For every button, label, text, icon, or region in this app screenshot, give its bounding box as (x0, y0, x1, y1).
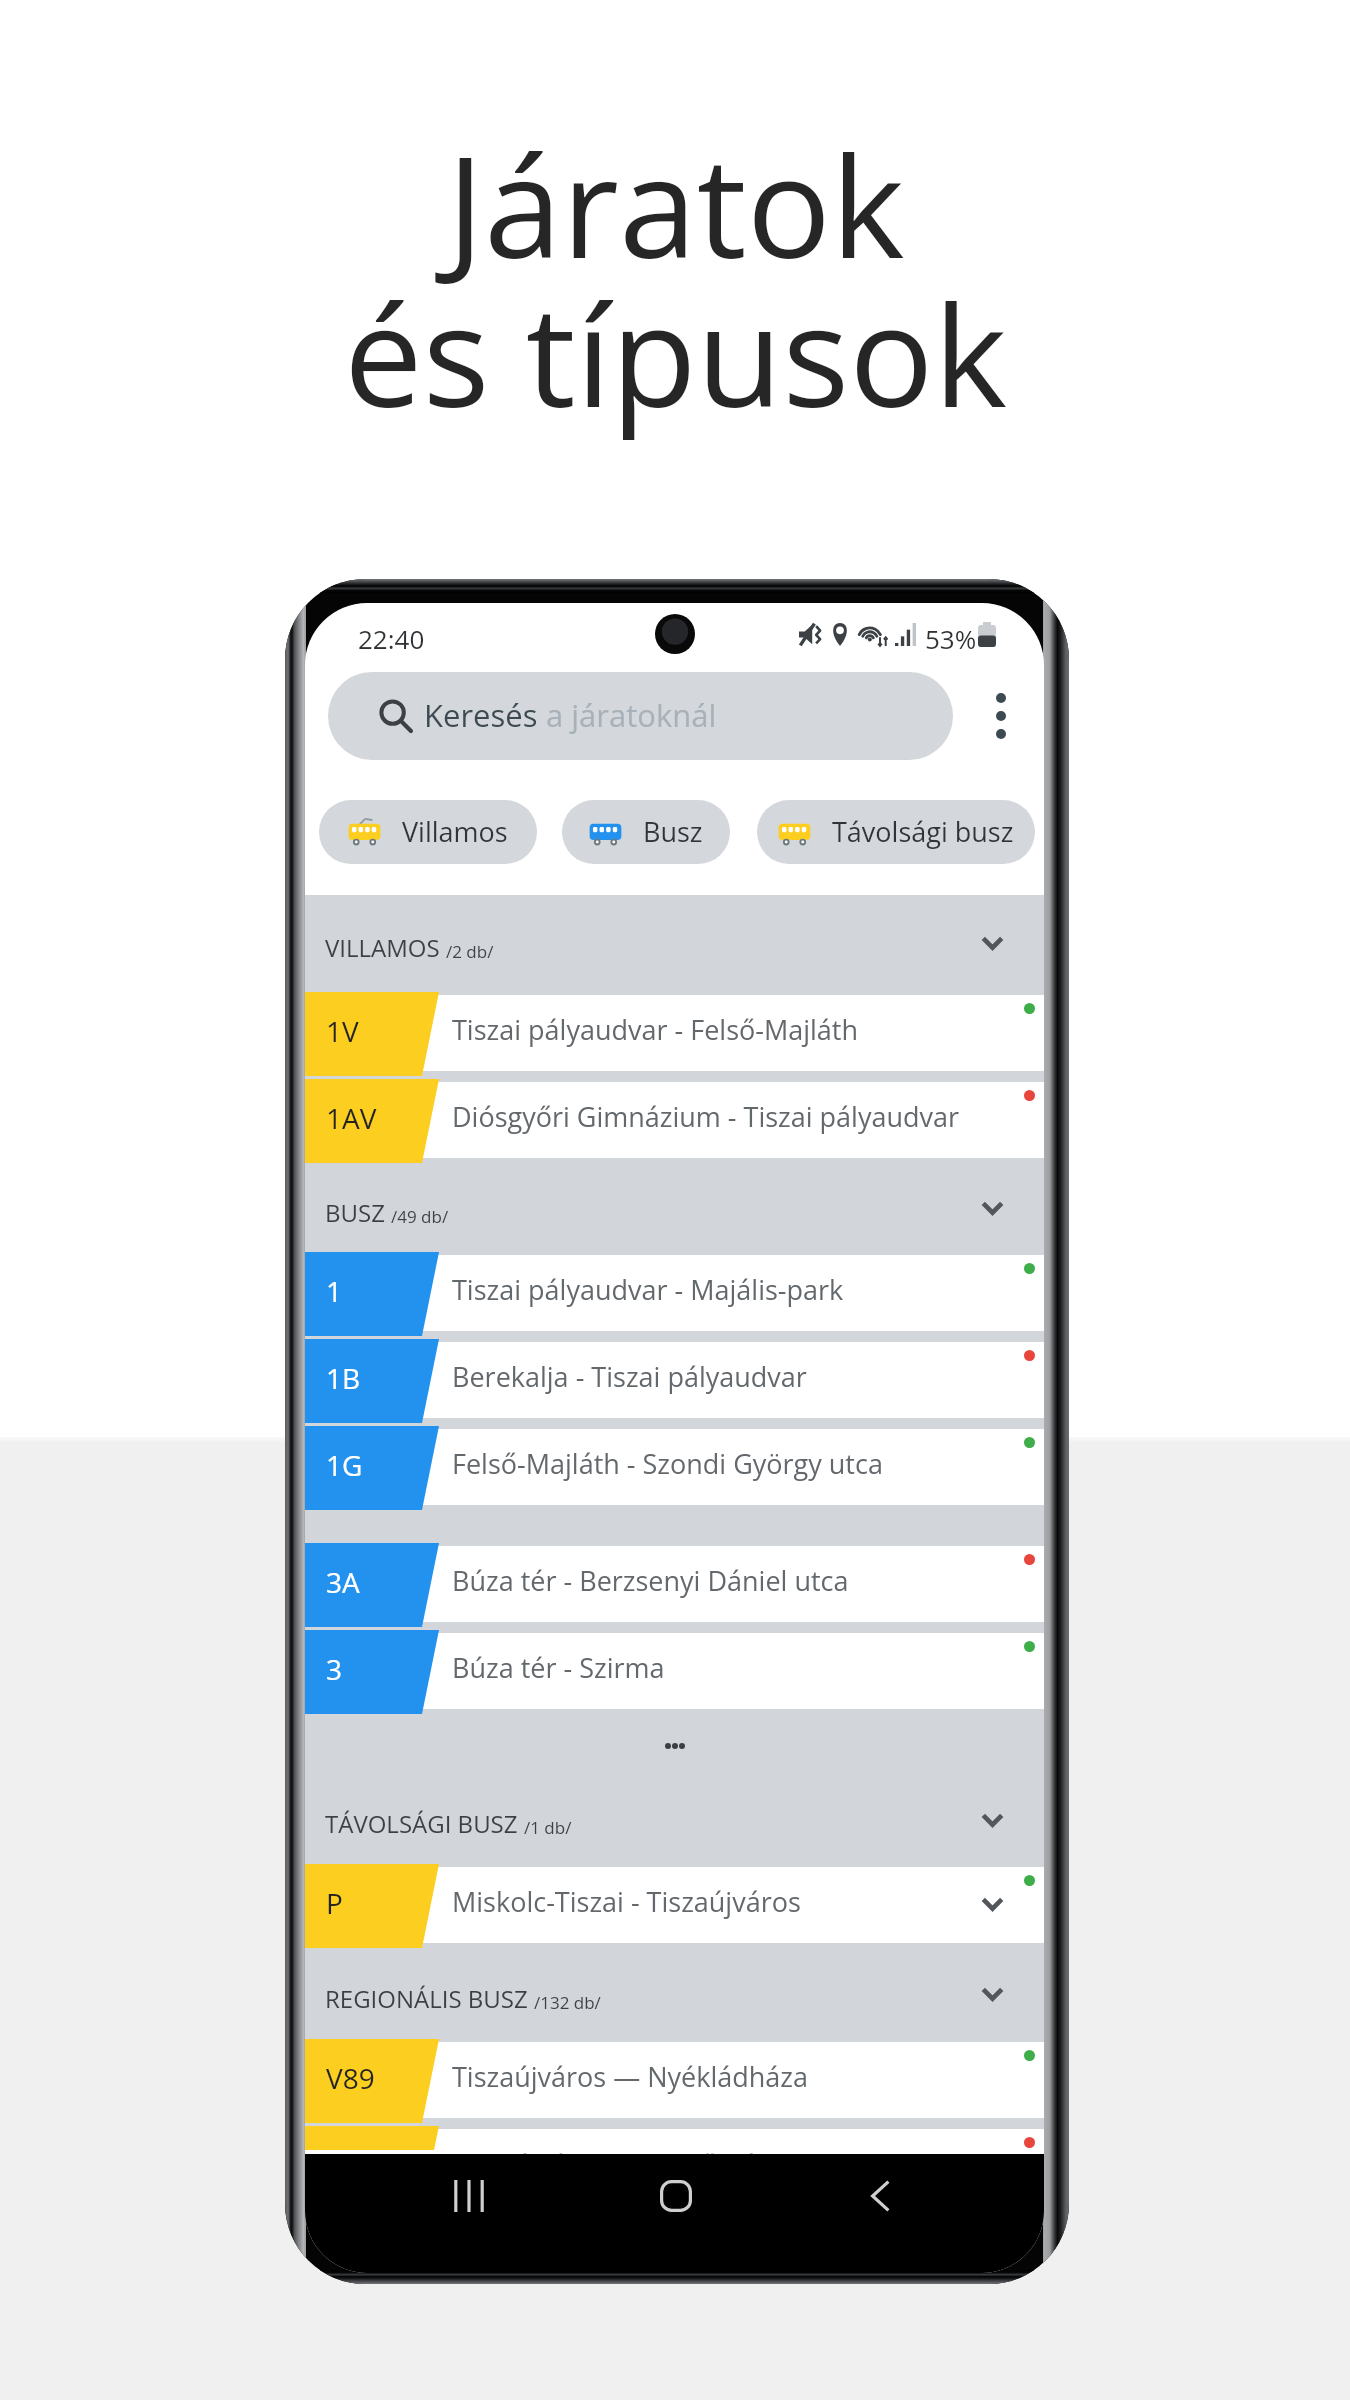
button[interactable]: P (305, 1863, 1044, 1950)
staticText: BUSZ (325, 1196, 385, 1229)
staticText: Búza tér - Szirma (452, 1649, 665, 1686)
button[interactable]: 3A (305, 1542, 1044, 1629)
button[interactable]: 1B (305, 1338, 1044, 1425)
button[interactable]: VILLAMOS (305, 895, 1044, 991)
button[interactable]: Show more (305, 1716, 1044, 1776)
staticText: /49 db/ (391, 1205, 449, 1228)
staticText: 3A (326, 1563, 360, 1601)
button[interactable]: Recent apps (431, 2158, 507, 2234)
staticText: /1 db/ (524, 1816, 572, 1839)
staticText: Villamos (402, 813, 508, 850)
staticText: Berekalja - Tiszai pályaudvar (452, 1358, 807, 1395)
button[interactable]: Busz (562, 800, 730, 864)
staticText: TÁVOLSÁGI BUSZ (325, 1807, 518, 1840)
staticText: Diósgyőri Gimnázium - Tiszai pályaudvar (452, 1098, 960, 1135)
staticText: Járatok és típusok (344, 108, 1007, 448)
button[interactable]: Távolsági busz (757, 800, 1035, 864)
staticText: Felső-Majláth - Szondi György utca (452, 1445, 883, 1482)
button[interactable]: Back (842, 2158, 918, 2234)
button[interactable]: 1G (305, 1425, 1044, 1512)
button[interactable]: Tiszaújváros — Mezőcsát (305, 2125, 1044, 2150)
staticText: 22:40 (358, 621, 425, 656)
staticText: 1AV (326, 1099, 377, 1137)
staticText: Busz (643, 813, 703, 850)
staticText: Tiszaújváros — Nyékládháza (452, 2058, 809, 2095)
staticText: 53% (925, 621, 977, 656)
staticText: Tiszaújváros — Mezőcsát (452, 2146, 767, 2171)
button[interactable]: Keresés (328, 672, 953, 760)
staticText: Távolsági busz (832, 813, 1014, 850)
staticText: Tiszai pályaudvar - Felső-Majláth (452, 1011, 859, 1048)
button[interactable]: V89 (305, 2038, 1044, 2125)
staticText: Búza tér - Berzsenyi Dániel utca (452, 1562, 849, 1599)
staticText: /2 db/ (446, 940, 494, 963)
staticText: /132 db/ (534, 1991, 601, 2014)
staticText: V89 (326, 2059, 375, 2097)
staticText: P (326, 1884, 343, 1922)
staticText: Tiszai pályaudvar - Majális-park (452, 1271, 844, 1308)
button[interactable]: Home (638, 2158, 714, 2234)
button[interactable]: REGIONÁLIS BUSZ (305, 1950, 1044, 2038)
staticText: 1G (326, 1446, 363, 1484)
staticText: 1V (326, 1012, 359, 1050)
staticText: 1 (326, 1272, 343, 1310)
button[interactable]: TÁVOLSÁGI BUSZ (305, 1776, 1044, 1863)
staticText: 1B (326, 1359, 361, 1397)
staticText: a járatoknál (546, 694, 717, 736)
staticText: Keresés (424, 694, 546, 736)
button[interactable]: 1AV (305, 1078, 1044, 1165)
button[interactable]: BUSZ (305, 1165, 1044, 1251)
staticText: REGIONÁLIS BUSZ (325, 1982, 528, 2015)
button[interactable]: 3 (305, 1629, 1044, 1716)
button[interactable]: 1V (305, 991, 1044, 1078)
button[interactable]: Villamos (319, 800, 537, 864)
button[interactable]: 1 (305, 1251, 1044, 1338)
button[interactable]: More options (965, 672, 1037, 760)
staticText: Miskolc-Tiszai - Tiszaújváros (452, 1883, 801, 1920)
staticText: 3 (326, 1650, 343, 1688)
staticText: VILLAMOS (325, 931, 440, 964)
